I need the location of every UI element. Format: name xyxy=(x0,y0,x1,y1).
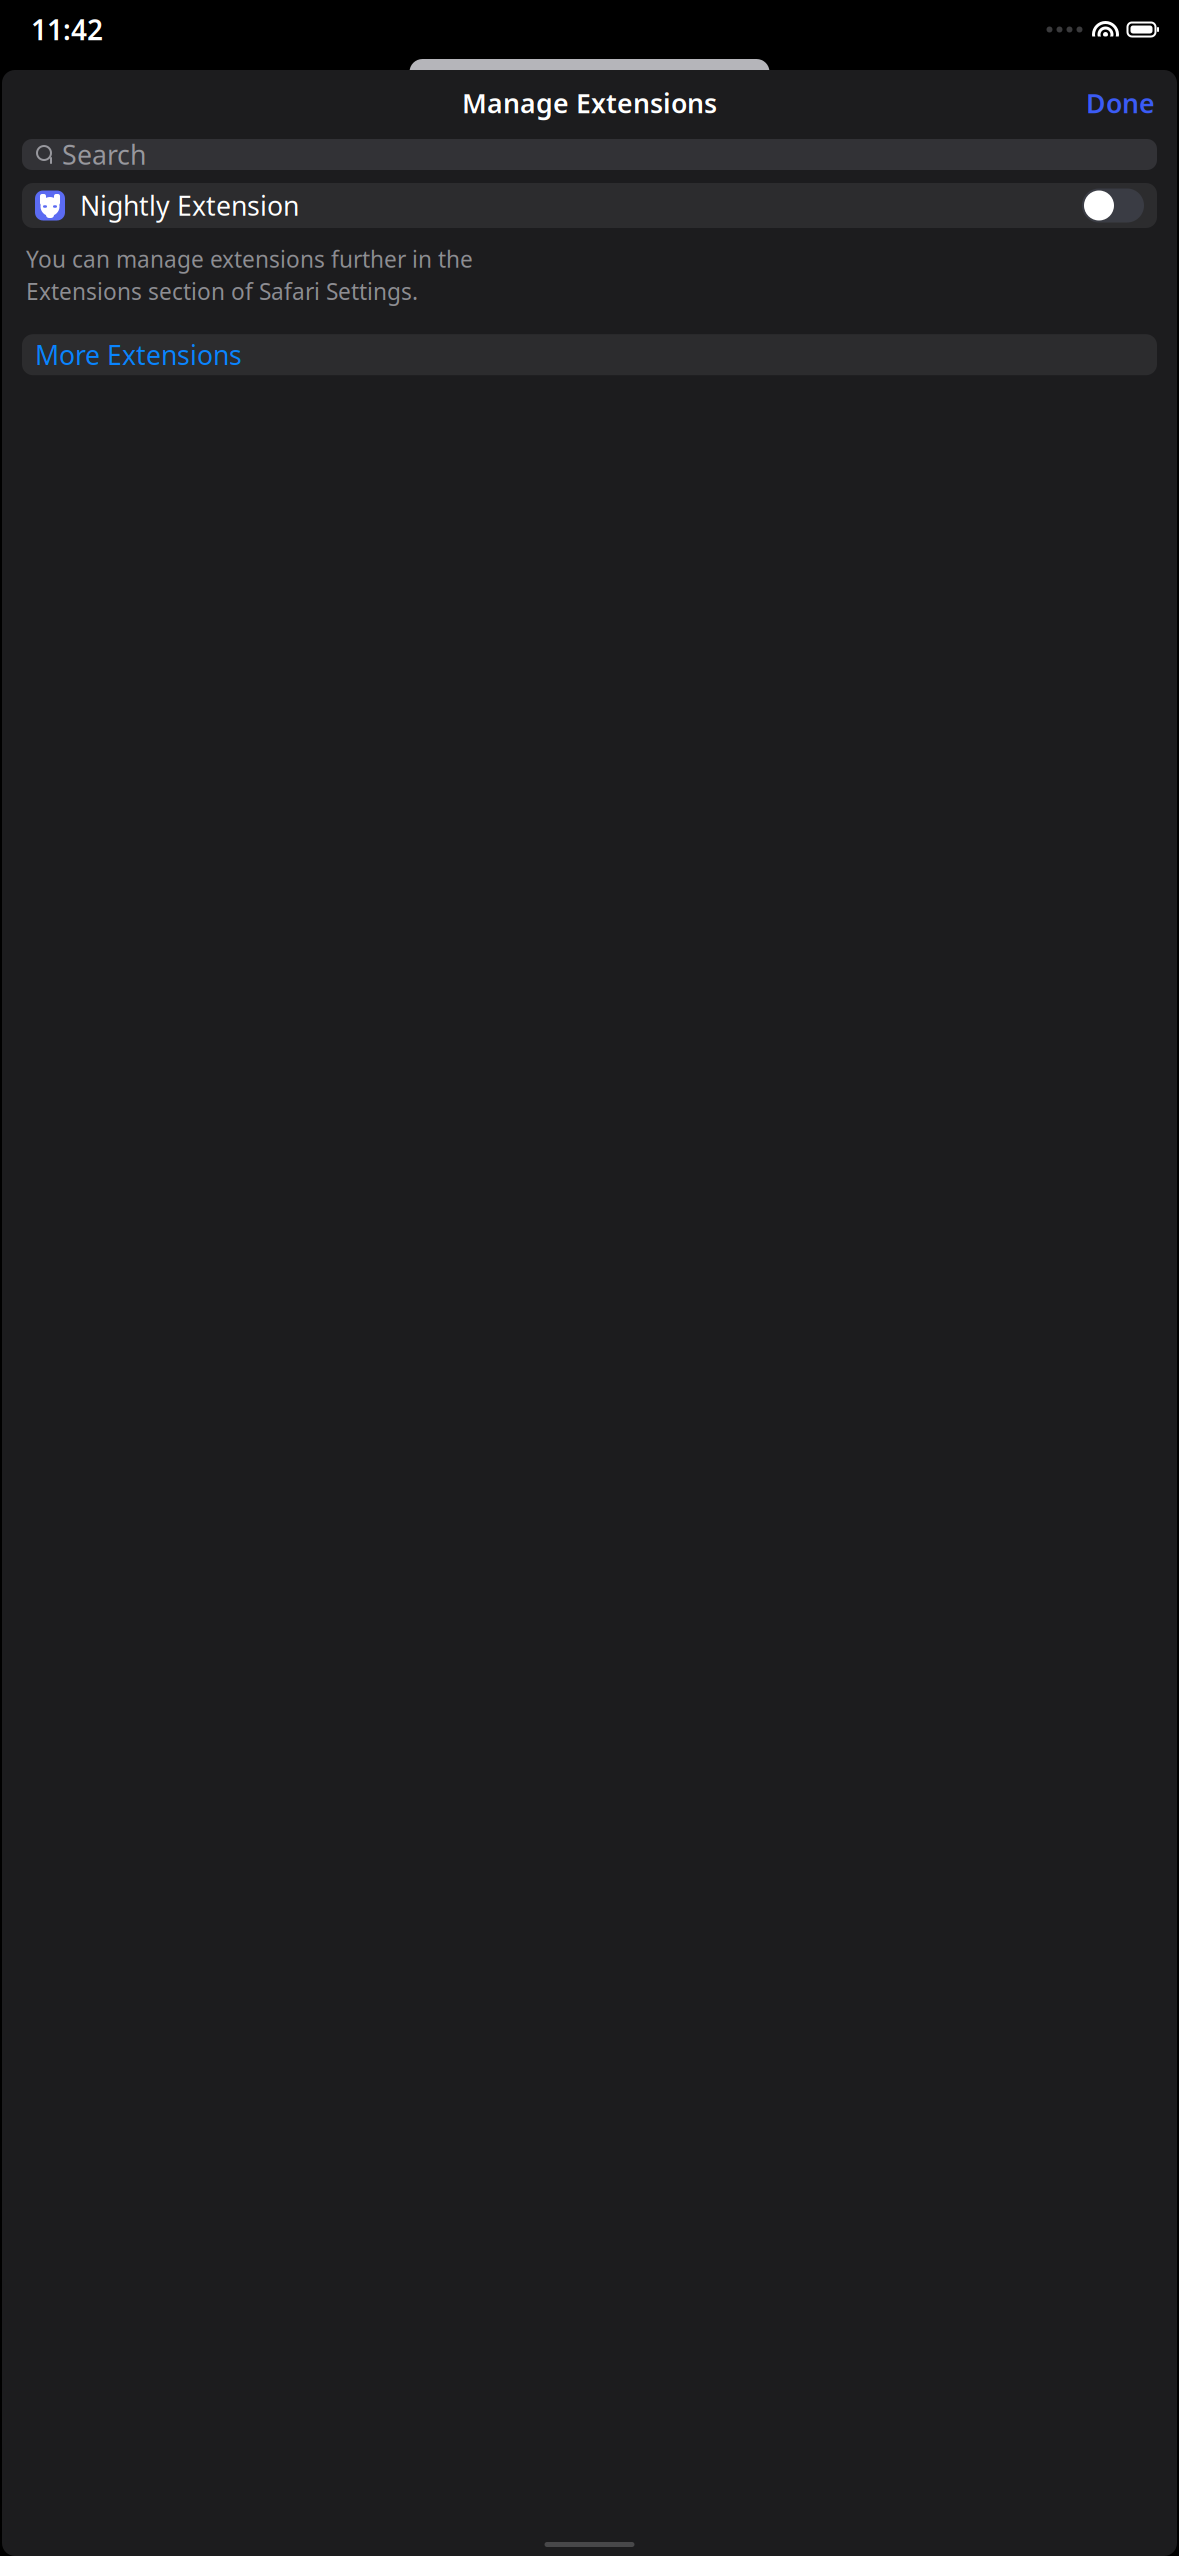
staticText: Extensions section of Safari Settings. xyxy=(26,276,418,306)
button[interactable]: More Extensions xyxy=(22,334,1157,375)
button[interactable]: Search xyxy=(22,139,1157,170)
staticText: Done xyxy=(1086,85,1155,121)
staticText: Search xyxy=(62,137,146,172)
button[interactable]: Done xyxy=(1074,77,1167,129)
staticText: You can manage extensions further in the xyxy=(26,244,473,274)
button[interactable]: Nightly Extension toggle xyxy=(1082,188,1144,222)
staticText: More Extensions xyxy=(35,337,242,372)
staticText: Nightly Extension xyxy=(80,188,299,223)
staticText: Manage Extensions xyxy=(462,85,717,121)
staticText: 11:42 xyxy=(31,11,103,48)
button[interactable]: Nightly Extension xyxy=(22,183,1157,228)
